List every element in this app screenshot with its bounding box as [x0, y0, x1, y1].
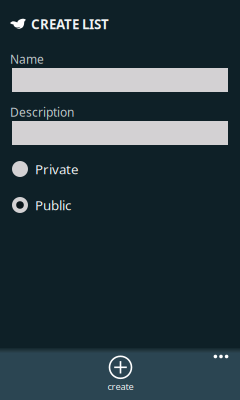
staticText: CREATE LIST	[31, 15, 109, 33]
staticText: Private	[35, 160, 79, 178]
staticText: Public	[35, 196, 71, 214]
staticText: Description	[10, 104, 74, 120]
button[interactable]: Private	[12, 154, 228, 184]
button[interactable]: Public	[12, 190, 228, 220]
staticText: Name	[10, 51, 44, 67]
button[interactable]: More options	[204, 344, 238, 368]
button[interactable]: create	[85, 354, 155, 394]
staticText: create	[107, 380, 133, 393]
